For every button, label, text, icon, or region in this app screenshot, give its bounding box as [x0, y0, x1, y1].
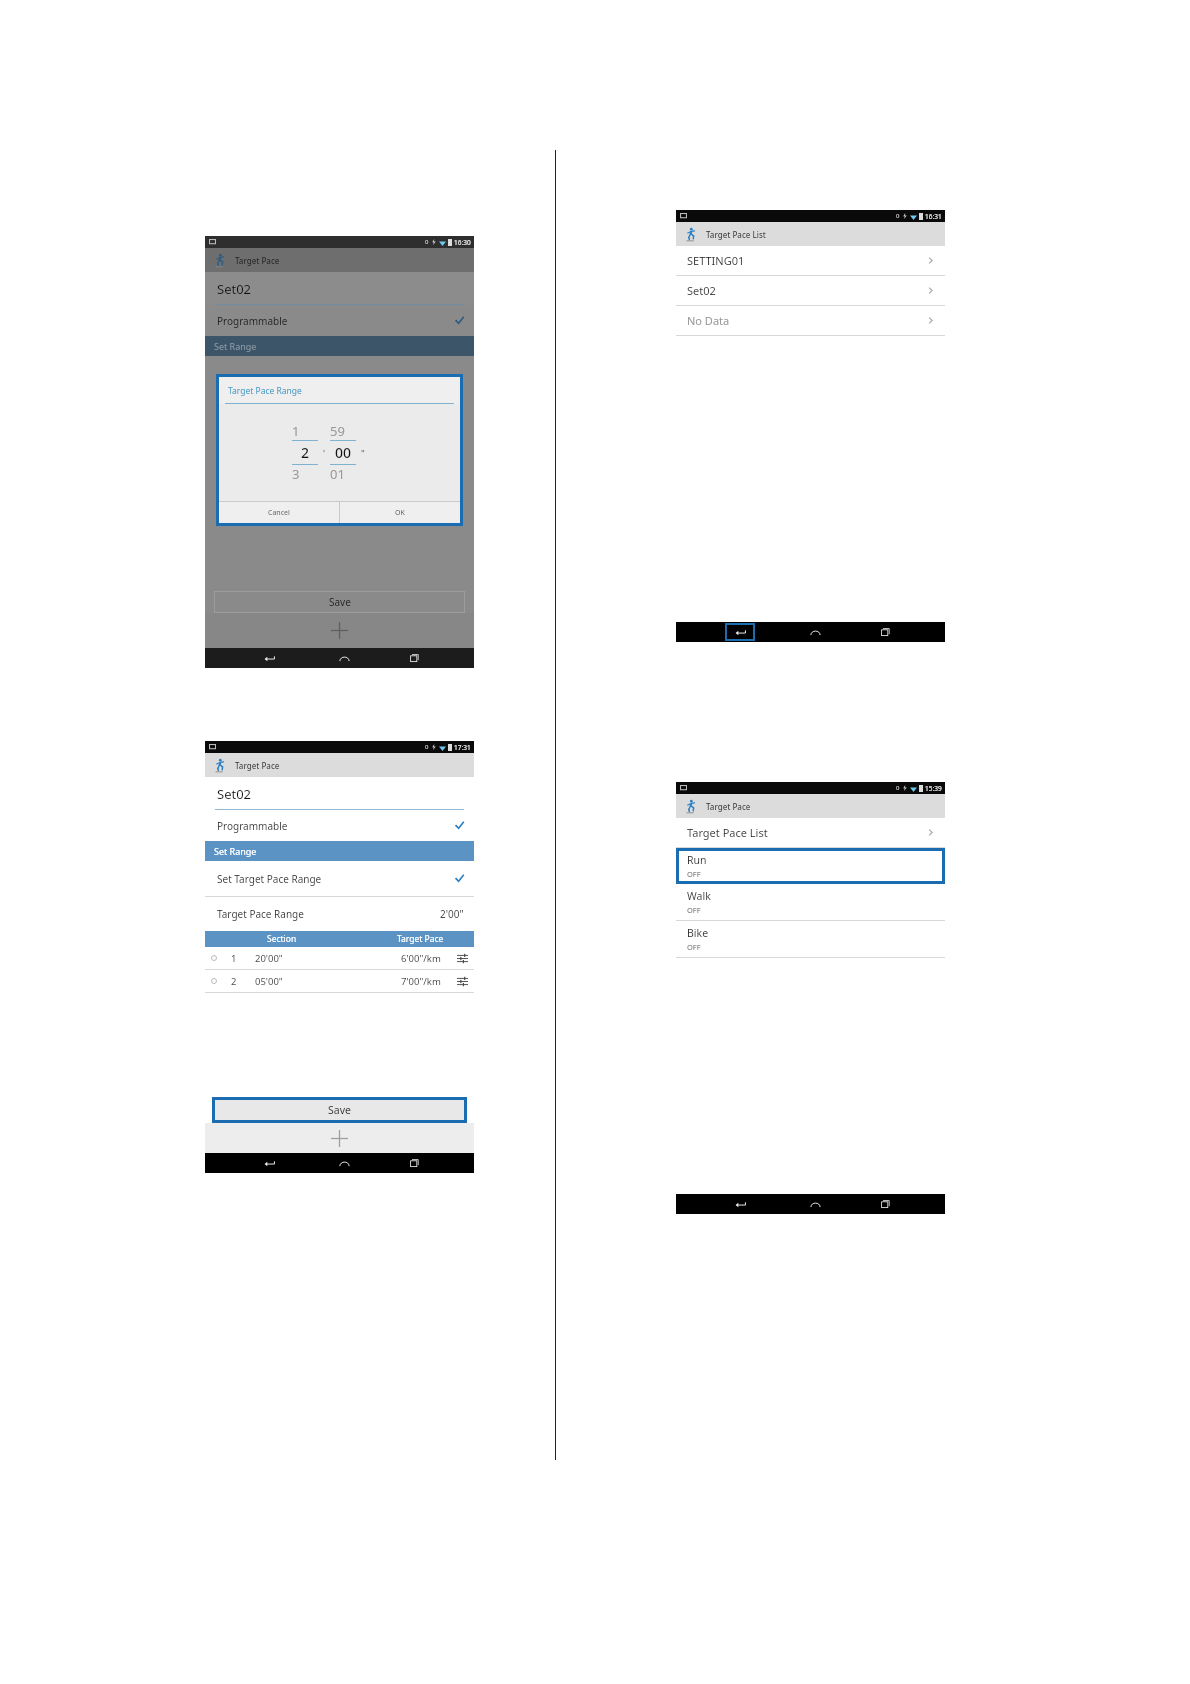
- button[interactable]: Back: [254, 649, 284, 667]
- staticText: 01: [330, 465, 356, 483]
- staticText: 6'00"/km: [401, 952, 441, 965]
- button[interactable]: Recents: [874, 1195, 896, 1213]
- staticText: Target Pace: [235, 255, 280, 266]
- button[interactable]: Programmable: [205, 305, 474, 336]
- staticText: 59: [330, 422, 356, 440]
- button[interactable]: Recents: [403, 1154, 425, 1172]
- staticText: Programmable: [217, 314, 288, 328]
- button[interactable]: Save: [215, 1100, 464, 1120]
- button[interactable]: Programmable: [205, 810, 474, 841]
- staticText: Walk: [687, 889, 711, 903]
- button[interactable]: Save: [214, 591, 465, 613]
- staticText: No Data: [687, 313, 730, 328]
- staticText: ": [361, 447, 365, 459]
- staticText: Set02: [217, 785, 252, 803]
- staticText: Target Pace List: [687, 825, 768, 840]
- staticText: OFF: [687, 942, 701, 952]
- staticText: Programmable: [217, 819, 288, 833]
- staticText: OFF: [687, 869, 701, 879]
- staticText: Target Pace: [706, 801, 751, 812]
- staticText: 15:39: [925, 784, 942, 793]
- staticText: 0: [896, 784, 900, 792]
- staticText: ': [323, 447, 326, 459]
- staticText: OFF: [687, 905, 701, 915]
- button[interactable]: Cancel: [219, 502, 339, 523]
- button[interactable]: Bike: [676, 921, 945, 957]
- staticText: 1: [231, 952, 237, 965]
- staticText: Save: [328, 1103, 351, 1117]
- staticText: SETTING01: [687, 253, 745, 268]
- staticText: 3: [292, 465, 318, 483]
- staticText: Target Pace Range: [217, 907, 304, 921]
- staticText: 00: [330, 443, 356, 462]
- button[interactable]: Home: [333, 1154, 355, 1172]
- staticText: 7'00"/km: [401, 975, 441, 988]
- staticText: 16:30: [454, 238, 471, 247]
- button[interactable]: OK: [340, 502, 460, 523]
- button[interactable]: No Data: [676, 306, 945, 335]
- button[interactable]: 1: [205, 947, 474, 969]
- button[interactable]: Recents: [403, 649, 425, 667]
- button[interactable]: Walk: [676, 884, 945, 920]
- staticText: 1: [292, 422, 318, 440]
- button[interactable]: Back: [254, 1154, 284, 1172]
- staticText: Bike: [687, 926, 709, 940]
- button[interactable]: Home: [804, 623, 826, 641]
- staticText: Run: [687, 853, 707, 867]
- staticText: 2: [231, 975, 237, 988]
- button[interactable]: Back: [725, 1195, 755, 1213]
- staticText: Target Pace Range: [228, 385, 302, 397]
- staticText: 17:31: [454, 743, 471, 752]
- button[interactable]: Add: [205, 1123, 474, 1153]
- button[interactable]: Target Pace Range: [205, 897, 474, 931]
- staticText: 0: [425, 743, 429, 751]
- staticText: Set02: [217, 280, 252, 298]
- button[interactable]: Back: [725, 623, 755, 641]
- staticText: Target Pace: [235, 760, 280, 771]
- staticText: Cancel: [268, 508, 290, 518]
- button[interactable]: Target Pace List: [676, 818, 945, 847]
- staticText: 0: [896, 212, 900, 220]
- staticText: Set Range: [214, 845, 257, 857]
- staticText: Section: [267, 933, 297, 945]
- button[interactable]: Set Target Pace Range: [205, 861, 474, 896]
- staticText: Set02: [687, 283, 716, 298]
- staticText: Save: [329, 595, 351, 609]
- staticText: 2'00": [440, 907, 464, 921]
- button[interactable]: Set02: [676, 276, 945, 305]
- staticText: 0: [425, 238, 429, 246]
- button[interactable]: Edit section: [457, 953, 468, 964]
- button[interactable]: Home: [804, 1195, 826, 1213]
- staticText: Target Pace: [397, 933, 444, 945]
- staticText: 05'00": [255, 975, 283, 988]
- staticText: OK: [395, 508, 405, 518]
- button[interactable]: 2: [205, 970, 474, 992]
- staticText: Target Pace List: [706, 229, 766, 240]
- staticText: 16:31: [925, 212, 942, 221]
- staticText: 2: [292, 443, 318, 462]
- button[interactable]: Edit section: [457, 976, 468, 987]
- staticText: 20'00": [255, 952, 283, 965]
- button[interactable]: Run: [676, 848, 945, 884]
- button[interactable]: Home: [333, 649, 355, 667]
- staticText: Set Target Pace Range: [217, 872, 322, 886]
- button[interactable]: Recents: [874, 623, 896, 641]
- staticText: Set Range: [214, 340, 257, 352]
- button[interactable]: SETTING01: [676, 246, 945, 275]
